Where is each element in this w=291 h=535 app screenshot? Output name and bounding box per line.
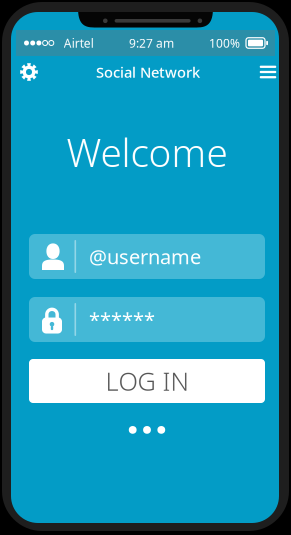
- staticText: 9:27 am: [129, 35, 174, 51]
- button[interactable]: Menu: [257, 55, 279, 89]
- staticText: Social Network: [96, 62, 200, 82]
- staticText: LOG IN: [105, 364, 188, 398]
- staticText: @username: [89, 243, 201, 270]
- button[interactable]: Settings: [11, 55, 47, 89]
- staticText: ******: [89, 306, 155, 333]
- staticText: 100%: [209, 35, 240, 51]
- staticText: Welcome: [66, 126, 227, 178]
- button[interactable]: LOG IN: [29, 359, 265, 403]
- staticText: Airtel: [64, 35, 94, 51]
